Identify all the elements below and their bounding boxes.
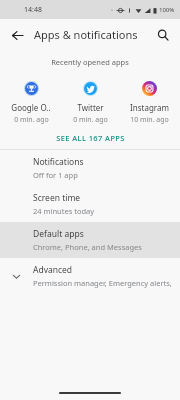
staticText: 24 minutes today: [33, 206, 95, 216]
button[interactable]: Screen time: [0, 186, 180, 222]
button[interactable]: Default apps: [0, 222, 180, 258]
button[interactable]: Instagram: [121, 79, 177, 127]
staticText: 10 min. ago: [130, 115, 169, 125]
staticText: Permission manager, Emergency alerts, Sp…: [33, 278, 174, 288]
staticText: 0 min. ago: [14, 115, 49, 125]
staticText: Recently opened apps: [0, 57, 180, 67]
staticText: Google O..: [11, 102, 51, 113]
staticText: Off for 1 app: [33, 170, 78, 180]
staticText: SEE ALL 167 APPS: [56, 133, 125, 143]
staticText: Default apps: [33, 228, 84, 240]
button[interactable]: Twitter: [62, 79, 118, 127]
button[interactable]: SEE ALL 167 APPS: [0, 127, 180, 149]
button[interactable]: Google O..: [3, 79, 59, 127]
staticText: Twitter: [77, 102, 104, 113]
staticText: Instagram: [130, 102, 169, 113]
staticText: 0 min. ago: [73, 115, 108, 125]
staticText: Advanced: [33, 264, 73, 276]
staticText: 100%: [159, 6, 175, 14]
staticText: Screen time: [33, 192, 81, 204]
button[interactable]: Search: [152, 24, 174, 46]
staticText: 14:48: [24, 5, 42, 15]
staticText: Notifications: [33, 156, 84, 168]
staticText: Apps & notifications: [34, 27, 138, 42]
button[interactable]: Notifications: [0, 150, 180, 186]
button[interactable]: Back: [6, 24, 28, 46]
staticText: Chrome, Phone, and Messages: [33, 242, 142, 252]
button[interactable]: Advanced: [0, 258, 180, 294]
